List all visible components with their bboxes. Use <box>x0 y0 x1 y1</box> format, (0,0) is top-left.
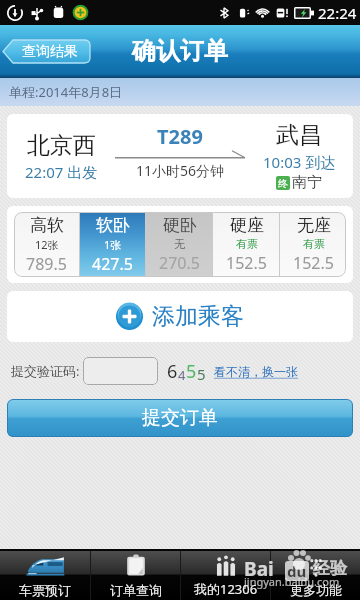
staticText: 终 <box>278 177 288 190</box>
staticText: 硬座 <box>230 215 264 236</box>
staticText: 单程:2014年8月8日 <box>9 83 123 101</box>
button[interactable]: Captcha input <box>83 357 158 385</box>
staticText: du <box>287 561 307 581</box>
staticText: 南宁 <box>292 173 322 192</box>
button[interactable]: 提交订单 <box>7 399 353 437</box>
staticText: 789.5 <box>26 253 67 275</box>
staticText: 查询结果 <box>22 43 78 61</box>
staticText: 有票 <box>303 237 325 251</box>
staticText: 5 <box>197 364 206 384</box>
button[interactable]: 硬座 <box>213 212 279 277</box>
button[interactable]: 查询结果 <box>2 39 91 64</box>
staticText: 6 <box>167 359 178 384</box>
staticText: 经验 <box>313 558 347 579</box>
staticText: 10:03 到达 <box>263 152 336 172</box>
staticText: 22:07 出发 <box>25 162 98 182</box>
button[interactable]: 北京西 <box>7 114 353 198</box>
staticText: 无 <box>174 237 185 251</box>
button[interactable]: 高软 <box>14 212 79 277</box>
staticText: 427.5 <box>92 253 133 275</box>
staticText: 有票 <box>236 237 258 251</box>
staticText: 硬卧 <box>163 215 197 236</box>
staticText: 1张 <box>104 237 122 252</box>
staticText: 北京西 <box>27 131 96 160</box>
staticText: 11小时56分钟 <box>136 161 225 180</box>
staticText: 无座 <box>297 215 331 236</box>
staticText: 确认订单 <box>132 36 228 66</box>
staticText: 5 <box>186 359 197 384</box>
staticText: 车票预订 <box>19 582 71 598</box>
staticText: 添加乘客 <box>152 302 244 331</box>
staticText: 提交验证码: <box>11 362 80 380</box>
staticText: 高软 <box>30 215 64 236</box>
staticText: 更多功能 <box>290 582 342 598</box>
staticText: Bai <box>244 556 274 582</box>
button[interactable]: 无座 <box>280 212 346 277</box>
staticText: 12张 <box>35 237 59 252</box>
button[interactable]: Order query <box>91 551 180 600</box>
button[interactable]: More <box>271 551 360 600</box>
staticText: 4 <box>178 366 186 384</box>
button[interactable]: 看不清，换一张 <box>214 364 298 379</box>
staticText: 订单查询 <box>110 582 162 598</box>
staticText: 看不清，换一张 <box>214 364 298 379</box>
button[interactable]: 软卧 <box>80 212 145 277</box>
staticText: T289 <box>157 123 203 150</box>
staticText: 152.5 <box>226 252 267 274</box>
staticText: 270.5 <box>159 252 200 274</box>
button[interactable]: 硬卧 <box>146 212 212 277</box>
staticText: 软卧 <box>96 215 130 236</box>
button[interactable]: My 12306 <box>181 551 270 600</box>
staticText: 152.5 <box>293 252 334 274</box>
staticText: jingyan.baidu.com <box>244 574 340 589</box>
button[interactable]: 添加乘客 <box>7 291 353 342</box>
staticText: 提交订单 <box>142 406 218 430</box>
staticText: 我的12306 <box>194 580 258 598</box>
staticText: 武昌 <box>276 121 322 150</box>
staticText: 22:24 <box>318 3 357 23</box>
button[interactable]: Book ticket <box>0 551 90 600</box>
